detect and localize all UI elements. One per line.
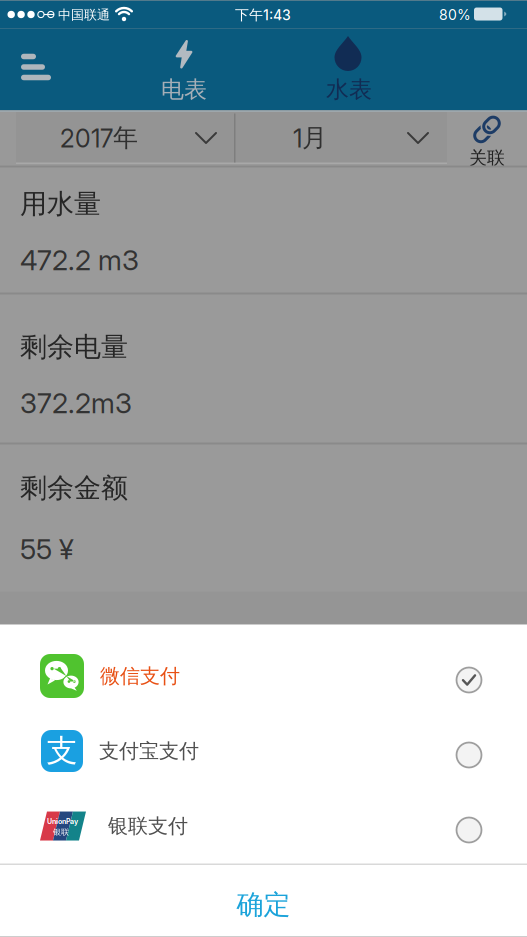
button[interactable]: 支 xyxy=(0,713,527,788)
button[interactable]: 2017年 xyxy=(16,112,235,164)
staticText: 剩余电量 xyxy=(20,330,128,364)
button[interactable]: 菜单 xyxy=(13,46,59,88)
button[interactable]: 电表 xyxy=(119,28,249,110)
button[interactable]: 1月 xyxy=(235,112,447,164)
staticText: 支付宝支付 xyxy=(99,739,199,763)
staticText: 确定 xyxy=(236,888,290,921)
button[interactable]: 微信支付 xyxy=(0,638,527,713)
staticText: 2017年 xyxy=(60,123,138,153)
staticText: 银联支付 xyxy=(108,814,188,838)
staticText: 中国联通 xyxy=(58,7,110,23)
staticText: 电表 xyxy=(161,75,207,104)
staticText: 支 xyxy=(46,732,77,770)
staticText: UnionPay xyxy=(47,817,78,826)
staticText: 用水量 xyxy=(20,187,101,221)
staticText: 372.2m3 xyxy=(20,387,132,420)
staticText: 银联 xyxy=(53,827,69,837)
staticText: 下午1:43 xyxy=(235,6,291,24)
staticText: 关联 xyxy=(469,147,505,169)
staticText: 剩余金额 xyxy=(20,471,128,505)
button[interactable]: UnionPay xyxy=(0,788,527,863)
staticText: 水表 xyxy=(326,75,372,104)
staticText: 1月 xyxy=(293,123,327,153)
button[interactable]: 关联 xyxy=(469,114,505,169)
button[interactable]: 水表 xyxy=(284,28,414,110)
staticText: 472.2 m3 xyxy=(20,244,139,277)
staticText: 微信支付 xyxy=(100,664,180,688)
staticText: 80% xyxy=(439,7,471,23)
staticText: 55 ¥ xyxy=(20,533,74,566)
button[interactable]: 确定 xyxy=(0,865,527,936)
